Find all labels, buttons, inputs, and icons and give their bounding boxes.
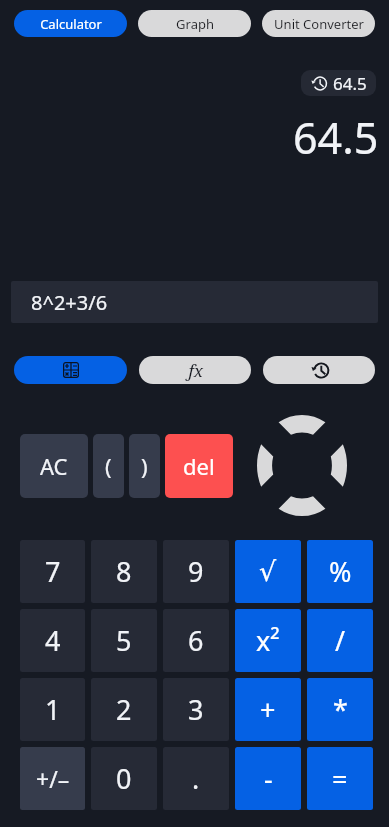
staticText: 3 [188, 691, 204, 728]
button[interactable]: AC [20, 434, 88, 498]
button[interactable]: . [163, 747, 229, 810]
button[interactable]: 0 [91, 747, 157, 810]
button[interactable]: 4 [20, 609, 85, 672]
staticText: Unit Converter [274, 15, 364, 33]
button[interactable]: * [307, 678, 373, 741]
button[interactable]: x² [235, 609, 301, 672]
staticText: 0 [116, 760, 132, 797]
staticText: = [332, 760, 348, 797]
button[interactable]: 7 [20, 540, 85, 603]
button[interactable]: 1 [20, 678, 85, 741]
button[interactable]: Functions [139, 356, 251, 384]
staticText: + [260, 691, 276, 728]
staticText: 7 [45, 553, 61, 590]
staticText: 9 [188, 553, 204, 590]
button[interactable]: +/– [20, 747, 85, 810]
button[interactable]: ) [129, 434, 160, 498]
staticText: ) [141, 451, 148, 481]
button[interactable]: + [235, 678, 301, 741]
staticText: / [335, 622, 346, 659]
button[interactable]: ( [93, 434, 124, 498]
staticText: Graph [176, 15, 214, 33]
staticText: x² [256, 622, 280, 659]
button[interactable]: 6 [163, 609, 229, 672]
staticText: 2 [116, 691, 132, 728]
button[interactable]: History [263, 356, 375, 384]
staticText: ƒx [187, 359, 204, 382]
staticText: AC [40, 451, 68, 481]
staticText: * [333, 691, 348, 728]
staticText: Calculator [40, 15, 102, 33]
staticText: 64.5 [333, 72, 367, 95]
staticText: 64.5 [293, 108, 379, 167]
button[interactable]: / [307, 609, 373, 672]
staticText: % [329, 553, 352, 590]
button[interactable]: 8^2+3/6 [11, 281, 378, 323]
button[interactable]: 8 [91, 540, 157, 603]
staticText: 5 [116, 622, 132, 659]
staticText: √ [259, 556, 277, 587]
staticText: ( [105, 451, 112, 481]
button[interactable]: Directional pad [257, 415, 347, 516]
staticText: 1 [45, 691, 61, 728]
staticText: 6 [188, 622, 204, 659]
button[interactable]: Graph [138, 10, 251, 37]
button[interactable]: del [165, 434, 233, 498]
button[interactable]: - [235, 747, 301, 810]
staticText: 8^2+3/6 [31, 289, 108, 316]
button[interactable]: Calculator [14, 10, 127, 37]
staticText: del [183, 451, 215, 481]
staticText: - [264, 760, 273, 797]
button[interactable]: 5 [91, 609, 157, 672]
button[interactable]: = [307, 747, 373, 810]
button[interactable]: 64.5 [301, 70, 376, 96]
staticText: 8 [116, 553, 132, 590]
button[interactable]: Unit Converter [262, 10, 375, 37]
button[interactable]: % [307, 540, 373, 603]
button[interactable]: 2 [91, 678, 157, 741]
button[interactable]: Calculator mode [14, 356, 127, 384]
staticText: +/– [36, 763, 70, 794]
button[interactable]: √ [235, 540, 301, 603]
staticText: . [192, 760, 200, 797]
button[interactable]: 3 [163, 678, 229, 741]
staticText: 4 [45, 622, 61, 659]
button[interactable]: 9 [163, 540, 229, 603]
